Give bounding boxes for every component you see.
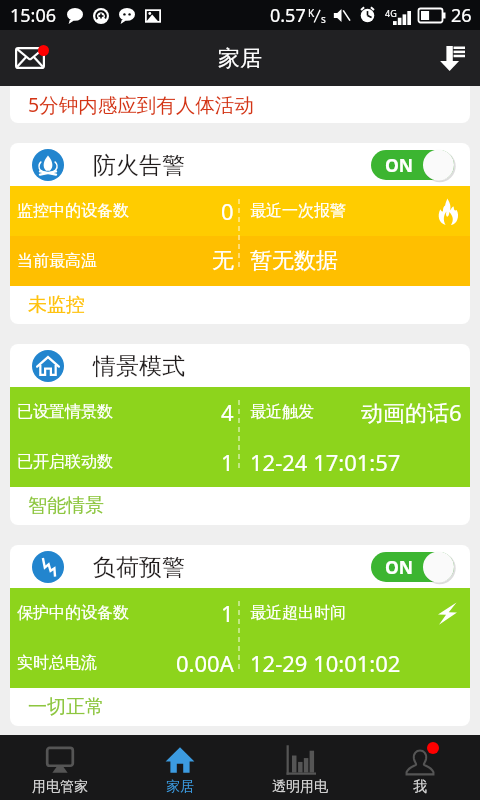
button[interactable]: Toggle 防火告警: [371, 149, 455, 181]
staticText: 用电管家: [32, 778, 88, 796]
button[interactable]: Sort: [430, 34, 478, 82]
staticText: 透明用电: [272, 778, 328, 796]
staticText: 4: [221, 397, 234, 427]
button[interactable]: 用电管家: [0, 735, 120, 800]
staticText: 当前最高温: [17, 251, 97, 271]
staticText: 12-29 10:01:02: [250, 648, 401, 678]
staticText: 家居: [166, 778, 194, 796]
staticText: 负荷预警: [93, 553, 185, 582]
other: 我: [404, 744, 436, 776]
button[interactable]: 防火告警: [10, 143, 470, 324]
staticText: 15:06: [10, 3, 57, 28]
staticText: 最近一次报警: [250, 201, 346, 221]
staticText: 我: [413, 778, 427, 796]
staticText: 26: [451, 3, 472, 28]
staticText: 防火告警: [93, 151, 185, 180]
staticText: 监控中的设备数: [17, 201, 129, 221]
button[interactable]: 透明用电: [240, 735, 360, 800]
staticText: 最近触发: [250, 402, 314, 422]
staticText: 12-24 17:01:57: [250, 447, 401, 477]
staticText: 无: [212, 247, 234, 275]
button[interactable]: 5分钟内感应到有人体活动: [10, 86, 470, 123]
staticText: 1: [221, 598, 234, 628]
staticText: 1: [221, 447, 234, 477]
staticText: 已开启联动数: [17, 452, 113, 472]
staticText: 最近超出时间: [250, 603, 346, 623]
button[interactable]: Toggle 负荷预警: [371, 551, 455, 583]
staticText: 一切正常: [28, 695, 104, 719]
button[interactable]: 家居: [120, 735, 240, 800]
staticText: 0.57: [270, 3, 306, 28]
staticText: 4G: [385, 7, 397, 19]
staticText: 已设置情景数: [17, 402, 113, 422]
staticText: 0.00A: [176, 648, 234, 678]
other: 透明用电: [284, 744, 316, 776]
staticText: ON: [385, 153, 414, 177]
other: 家居: [164, 744, 196, 776]
staticText: s: [321, 12, 326, 26]
other: 用电管家: [44, 744, 76, 776]
button[interactable]: 我: [360, 735, 480, 800]
button[interactable]: Messages: [6, 34, 54, 82]
staticText: 情景模式: [93, 352, 185, 381]
staticText: 动画的话6: [361, 397, 462, 427]
staticText: 家居: [218, 45, 262, 73]
button[interactable]: 负荷预警: [10, 545, 470, 726]
staticText: 保护中的设备数: [17, 603, 129, 623]
staticText: 0: [221, 196, 234, 226]
staticText: 智能情景: [28, 494, 104, 518]
staticText: K: [308, 6, 315, 20]
staticText: ON: [385, 555, 414, 579]
staticText: 未监控: [28, 293, 85, 317]
button[interactable]: 情景模式: [10, 344, 470, 525]
staticText: 实时总电流: [17, 653, 97, 673]
staticText: 暂无数据: [250, 247, 338, 275]
staticText: 5分钟内感应到有人体活动: [28, 91, 254, 118]
